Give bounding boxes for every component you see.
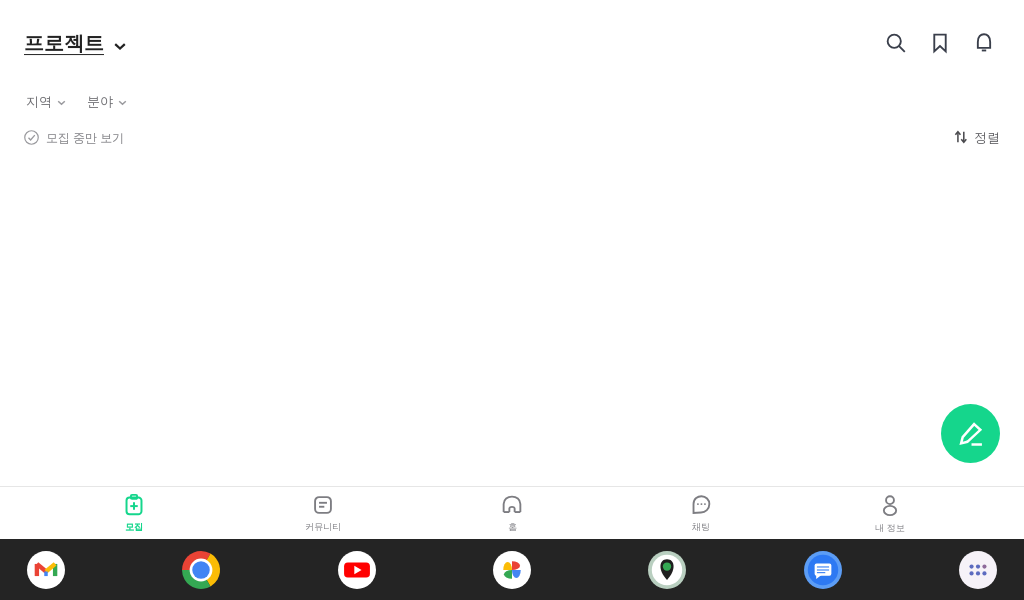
button[interactable]: Gmail [24, 548, 68, 592]
staticText: 커뮤니티 [305, 521, 341, 532]
button[interactable]: 커뮤니티 [268, 487, 378, 539]
staticText: 프로젝트 [24, 31, 104, 56]
button[interactable]: Bookmarks [918, 21, 962, 65]
button[interactable]: Maps [645, 548, 689, 592]
staticText: 모집 중만 보기 [46, 129, 125, 145]
button[interactable]: 정렬 [952, 123, 1002, 151]
button[interactable]: 지역 [24, 89, 69, 113]
button[interactable]: Messages [801, 548, 845, 592]
button[interactable]: Photos [490, 548, 534, 592]
staticText: 분야 [87, 93, 113, 109]
button[interactable]: Chrome [179, 548, 223, 592]
button[interactable]: 분야 [85, 89, 130, 113]
staticText: 채팅 [692, 521, 710, 532]
button[interactable]: 홈 [457, 487, 567, 539]
button[interactable]: Write [941, 404, 1000, 463]
button[interactable]: All apps [956, 548, 1000, 592]
button[interactable]: YouTube [335, 548, 379, 592]
staticText: 모집 [125, 521, 143, 532]
staticText: 지역 [26, 93, 52, 109]
button[interactable]: 채팅 [646, 487, 756, 539]
button[interactable]: 모집 중만 보기 [22, 123, 127, 151]
button[interactable]: 프로젝트 [24, 25, 128, 62]
staticText: 내 정보 [875, 521, 905, 533]
staticText: 홈 [508, 521, 517, 532]
button[interactable]: Search [874, 21, 918, 65]
staticText: 정렬 [974, 129, 1000, 145]
button[interactable]: 내 정보 [835, 487, 945, 539]
button[interactable]: Notifications [962, 21, 1006, 65]
button[interactable]: 모집 [79, 487, 189, 539]
